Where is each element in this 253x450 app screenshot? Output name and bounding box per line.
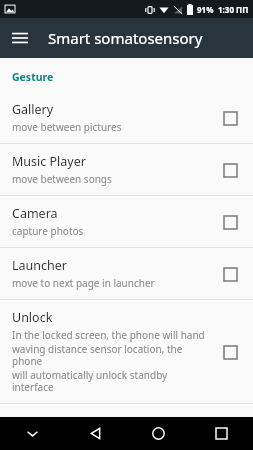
staticText: In the locked screen, the phone will han… (12, 328, 205, 342)
button[interactable]: Launcher (0, 248, 253, 299)
staticText: Gesture (12, 70, 54, 84)
button[interactable]: Gallery checkbox (217, 105, 243, 131)
staticText: move to next page in launcher (12, 276, 155, 290)
staticText: Gallery (12, 101, 54, 118)
button[interactable]: Unlock checkbox (217, 339, 243, 365)
staticText: Launcher (12, 257, 67, 274)
button[interactable]: Launcher checkbox (217, 261, 243, 287)
staticText: move between pictures (12, 120, 122, 134)
button[interactable]: Gesture (0, 58, 253, 92)
button[interactable]: Music Player checkbox (217, 157, 243, 183)
button[interactable]: Home (127, 417, 190, 450)
staticText: waving distance sensor location, the pho… (12, 342, 209, 368)
staticText: 1:30 ПП (218, 4, 249, 15)
button[interactable]: Camera checkbox (217, 209, 243, 235)
button[interactable]: Back (64, 417, 127, 450)
staticText: will automatically unlock standby interf… (12, 368, 209, 394)
staticText: Smart somatosensory (48, 28, 203, 48)
button[interactable]: Gallery (0, 92, 253, 143)
staticText: Camera (12, 205, 58, 222)
button[interactable]: Open navigation menu (6, 24, 34, 52)
button[interactable]: Recent apps (190, 417, 253, 450)
button[interactable]: Music Player (0, 144, 253, 195)
button[interactable]: Unlock (0, 300, 253, 403)
staticText: Music Player (12, 153, 86, 170)
button[interactable]: Collapse (0, 417, 64, 450)
staticText: capture photos (12, 224, 84, 238)
staticText: Unlock (12, 309, 53, 326)
staticText: 91% (197, 4, 214, 15)
staticText: move between songs (12, 172, 112, 186)
button[interactable]: Camera (0, 196, 253, 247)
